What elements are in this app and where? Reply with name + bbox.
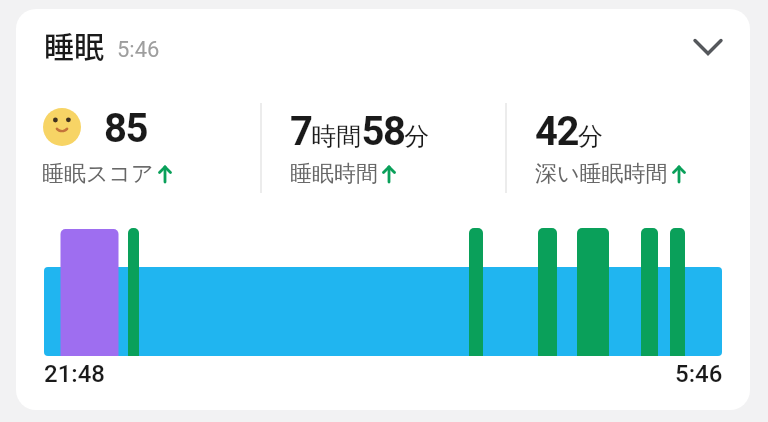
staticText: 85: [104, 105, 147, 152]
staticText: 5:46: [117, 37, 160, 63]
staticText: 睡眠スコア: [42, 160, 154, 188]
button[interactable]: 睡眠: [16, 9, 750, 410]
staticText: 42分: [535, 108, 603, 155]
staticText: 21:48: [44, 360, 105, 388]
staticText: 睡眠: [44, 23, 104, 66]
staticText: 5:46: [675, 360, 723, 388]
staticText: 睡眠時間: [290, 160, 378, 188]
staticText: 7時間58分: [290, 108, 430, 155]
button[interactable]: [688, 35, 728, 61]
staticText: 深い睡眠時間: [535, 160, 668, 188]
